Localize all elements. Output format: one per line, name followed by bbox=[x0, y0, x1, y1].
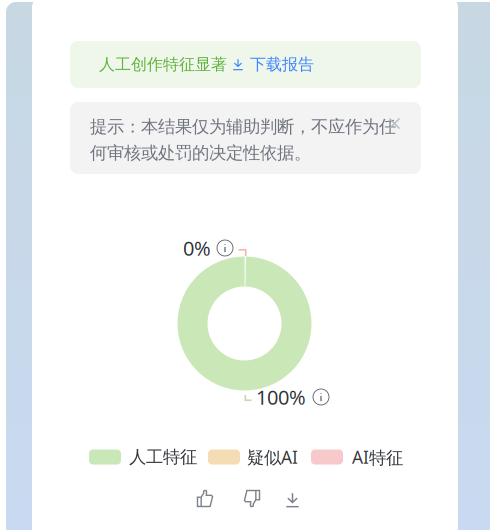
staticText: 何审核或处罚的决定性依据。 bbox=[90, 142, 311, 164]
button[interactable]: 人工创作特征显著 bbox=[70, 41, 421, 88]
staticText: 人工特征 bbox=[129, 446, 197, 468]
button[interactable]: Dislike bbox=[237, 483, 267, 513]
staticText: 0% bbox=[183, 235, 211, 261]
button[interactable]: Like bbox=[190, 483, 220, 513]
staticText: 100% bbox=[256, 384, 306, 410]
button[interactable]: Close bbox=[383, 112, 405, 134]
staticText: 提示：本结果仅为辅助判断，不应作为任 bbox=[90, 116, 396, 137]
staticText: 人工创作特征显著 bbox=[99, 55, 227, 74]
button[interactable]: Download bbox=[278, 485, 307, 515]
staticText: 疑似AI bbox=[247, 445, 298, 468]
staticText: 下载报告 bbox=[250, 55, 314, 74]
staticText: AI特征 bbox=[352, 445, 403, 468]
